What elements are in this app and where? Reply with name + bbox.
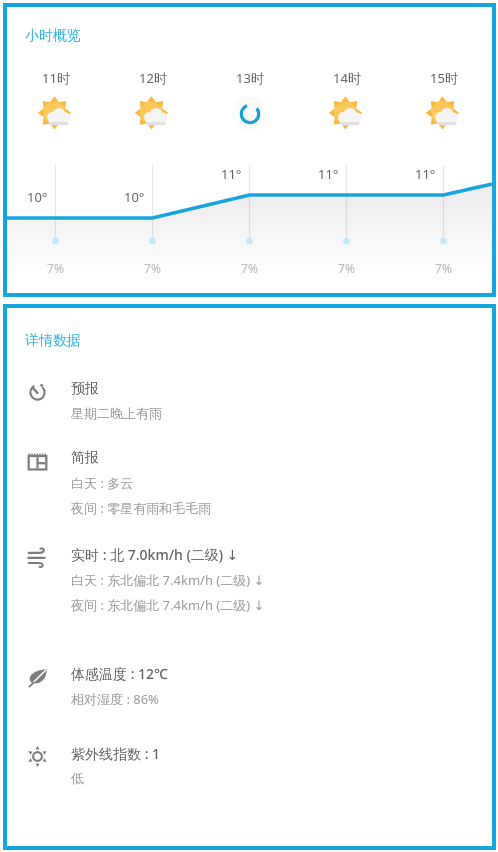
other: Summary <box>27 451 55 472</box>
other: Wind <box>27 547 55 568</box>
button[interactable]: 11时 <box>7 69 104 133</box>
button[interactable]: Wind <box>7 545 492 614</box>
staticText: 10° <box>27 188 48 206</box>
staticText: 11° <box>221 165 242 183</box>
button[interactable]: UV index <box>7 744 492 786</box>
staticText: 紫外线指数 : 1 <box>71 744 161 763</box>
staticText: 7% <box>241 260 258 276</box>
staticText: 13时 <box>236 69 264 87</box>
staticText: 7% <box>338 260 355 276</box>
staticText: 11时 <box>42 69 70 87</box>
button[interactable]: 12时 <box>104 69 201 133</box>
staticText: 12时 <box>139 69 167 87</box>
staticText: 低 <box>71 770 84 786</box>
staticText: 简报 <box>71 449 99 467</box>
button[interactable]: 13时 <box>201 69 298 133</box>
staticText: 7% <box>435 260 452 276</box>
staticText: 7% <box>144 260 161 276</box>
button[interactable]: Forecast <box>7 380 492 421</box>
staticText: 15时 <box>430 69 458 87</box>
button[interactable]: Summary <box>7 449 492 517</box>
button[interactable]: 15时 <box>395 69 492 133</box>
staticText: 体感温度 : 12℃ <box>71 664 169 683</box>
staticText: 相对湿度 : 86% <box>71 690 159 708</box>
staticText: 7% <box>47 260 64 276</box>
staticText: 11° <box>415 165 436 183</box>
staticText: 白天 : 多云 <box>71 474 134 492</box>
staticText: 夜间 : 零星有雨和毛毛雨 <box>71 499 212 517</box>
button[interactable]: 详情数据 <box>7 308 492 846</box>
staticText: 实时 : 北 7.0km/h (二级) ↓ <box>71 545 239 564</box>
staticText: 详情数据 <box>25 332 81 350</box>
button[interactable]: 小时概览 <box>7 7 492 293</box>
staticText: 小时概览 <box>25 27 81 45</box>
staticText: 预报 <box>71 380 99 398</box>
other: UV index <box>27 746 55 767</box>
button[interactable]: Feels like <box>7 664 492 708</box>
button[interactable]: 14时 <box>298 69 395 133</box>
other: Feels like <box>27 666 55 687</box>
staticText: 白天 : 东北偏北 7.4km/h (二级) ↓ <box>71 571 265 589</box>
staticText: 星期二晚上有雨 <box>71 405 162 421</box>
staticText: 10° <box>124 188 145 206</box>
staticText: 14时 <box>333 69 361 87</box>
other: Forecast <box>27 382 55 403</box>
staticText: 夜间 : 东北偏北 7.4km/h (二级) ↓ <box>71 596 265 614</box>
staticText: 11° <box>318 165 339 183</box>
